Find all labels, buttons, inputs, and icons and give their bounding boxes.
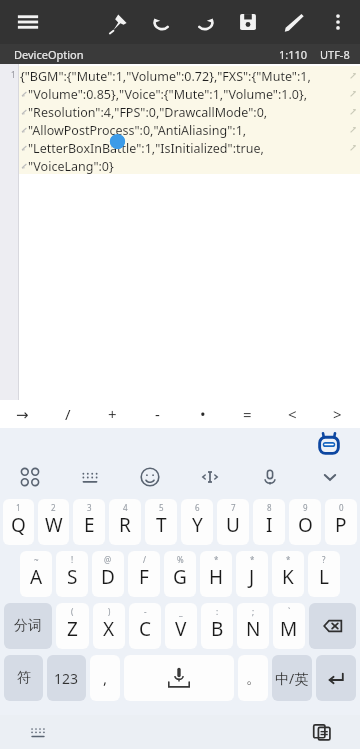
button[interactable]: ~ bbox=[20, 551, 52, 597]
button[interactable]: 123 bbox=[47, 655, 86, 701]
button[interactable]: 8 bbox=[253, 499, 285, 545]
button[interactable]: Voice input bbox=[240, 460, 300, 494]
staticText: L bbox=[319, 564, 329, 590]
button[interactable]: Redo bbox=[191, 8, 219, 36]
button[interactable]: Undo bbox=[148, 8, 176, 36]
button[interactable]: _ bbox=[165, 603, 197, 649]
staticText: ) bbox=[108, 606, 111, 617]
button[interactable]: * bbox=[272, 551, 304, 597]
button[interactable]: , bbox=[90, 655, 120, 701]
staticText: G bbox=[173, 564, 187, 590]
button[interactable]: 6 bbox=[181, 499, 213, 545]
button[interactable]: 2 bbox=[38, 499, 69, 545]
button[interactable]: * bbox=[200, 551, 232, 597]
staticText: "LetterBoxInBattle":1,"IsInitialized":tr… bbox=[28, 140, 264, 157]
button[interactable]: 。 bbox=[238, 655, 268, 701]
staticText: B bbox=[211, 616, 224, 642]
button[interactable]: 符 bbox=[4, 655, 43, 701]
button[interactable]: 分词 bbox=[4, 603, 52, 649]
staticText: % bbox=[177, 554, 184, 565]
button[interactable]: - bbox=[129, 603, 161, 649]
button[interactable]: Text edit bbox=[180, 460, 240, 494]
button[interactable]: More options bbox=[324, 8, 352, 36]
button[interactable]: Switch keyboard bbox=[26, 720, 50, 744]
staticText: 分词 bbox=[14, 617, 42, 635]
staticText: T bbox=[156, 512, 167, 538]
staticText: 8 bbox=[267, 502, 272, 513]
staticText: * bbox=[250, 554, 255, 565]
staticText: 1 bbox=[16, 502, 21, 513]
button[interactable]: + bbox=[90, 400, 135, 428]
staticText: N bbox=[246, 616, 261, 642]
button[interactable]: Pin bbox=[106, 8, 134, 36]
button[interactable]: 0 bbox=[325, 499, 357, 545]
staticText: , bbox=[103, 668, 108, 688]
staticText: / bbox=[65, 404, 71, 424]
staticText: X bbox=[103, 616, 115, 642]
staticText: 1:110 bbox=[279, 47, 308, 62]
button[interactable]: ! bbox=[56, 551, 88, 597]
button[interactable]: → bbox=[0, 400, 45, 428]
staticText: Y bbox=[192, 512, 203, 538]
button[interactable]: Menu bbox=[14, 8, 42, 36]
staticText: ( bbox=[71, 606, 74, 617]
button[interactable]: = bbox=[225, 400, 270, 428]
button[interactable]: < bbox=[270, 400, 315, 428]
staticText: V bbox=[175, 616, 187, 642]
button[interactable]: ` bbox=[273, 603, 305, 649]
button[interactable]: 中/英 bbox=[272, 655, 312, 701]
button[interactable]: 3 bbox=[73, 499, 105, 545]
button[interactable]: Backspace bbox=[309, 603, 356, 649]
button[interactable]: / bbox=[128, 551, 160, 597]
button[interactable]: Emoji bbox=[120, 460, 180, 494]
staticText: ? bbox=[322, 554, 326, 565]
staticText: 符 bbox=[17, 669, 31, 687]
button[interactable]: ; bbox=[237, 603, 269, 649]
staticText: 7 bbox=[231, 502, 236, 513]
button[interactable]: 4 bbox=[109, 499, 141, 545]
staticText: "Volume":0.85},"Voice":{"Mute":1,"Volume… bbox=[28, 86, 308, 103]
button[interactable]: : bbox=[201, 603, 233, 649]
staticText: • bbox=[200, 404, 206, 424]
staticText: D bbox=[101, 564, 115, 590]
staticText: 5 bbox=[159, 502, 164, 513]
button[interactable]: ( bbox=[56, 603, 89, 649]
staticText: R bbox=[119, 512, 131, 538]
button[interactable]: Assistant bbox=[316, 432, 342, 458]
button[interactable]: > bbox=[315, 400, 360, 428]
button[interactable]: - bbox=[135, 400, 180, 428]
button[interactable]: Space bbox=[124, 655, 234, 701]
staticText: 6 bbox=[195, 502, 200, 513]
button[interactable]: 9 bbox=[289, 499, 321, 545]
staticText: = bbox=[243, 404, 252, 424]
button[interactable]: Keyboard layout bbox=[60, 460, 120, 494]
button[interactable]: / bbox=[45, 400, 90, 428]
staticText: "Resolution":4,"FPS":0,"DrawcallMode":0, bbox=[28, 104, 268, 121]
button[interactable]: * bbox=[236, 551, 268, 597]
staticText: 3 bbox=[87, 502, 92, 513]
button[interactable]: Hide keyboard bbox=[300, 460, 360, 494]
button[interactable]: Enter bbox=[316, 655, 356, 701]
staticText: C bbox=[139, 616, 152, 642]
button[interactable]: ) bbox=[93, 603, 125, 649]
button[interactable]: 5 bbox=[145, 499, 177, 545]
button[interactable]: 7 bbox=[217, 499, 249, 545]
staticText: ; bbox=[252, 606, 255, 617]
button[interactable]: @ bbox=[92, 551, 124, 597]
button[interactable]: • bbox=[180, 400, 225, 428]
staticText: UTF-8 bbox=[320, 47, 350, 62]
staticText: O bbox=[298, 512, 313, 538]
button[interactable]: 1 bbox=[3, 499, 34, 545]
button[interactable]: Clipboard bbox=[310, 720, 334, 744]
staticText: M bbox=[280, 616, 298, 642]
button[interactable]: ? bbox=[308, 551, 340, 597]
staticText: {"BGM":{"Mute":1,"Volume":0.72},"FXS":{"… bbox=[20, 68, 311, 85]
staticText: ! bbox=[71, 554, 74, 565]
button[interactable]: Apps bbox=[0, 460, 60, 494]
button[interactable]: % bbox=[164, 551, 196, 597]
staticText: 1 bbox=[4, 68, 16, 80]
button[interactable]: Save bbox=[234, 8, 262, 36]
staticText: 123 bbox=[54, 669, 79, 688]
button[interactable]: Edit bbox=[280, 8, 308, 36]
staticText: ~ bbox=[34, 554, 39, 565]
